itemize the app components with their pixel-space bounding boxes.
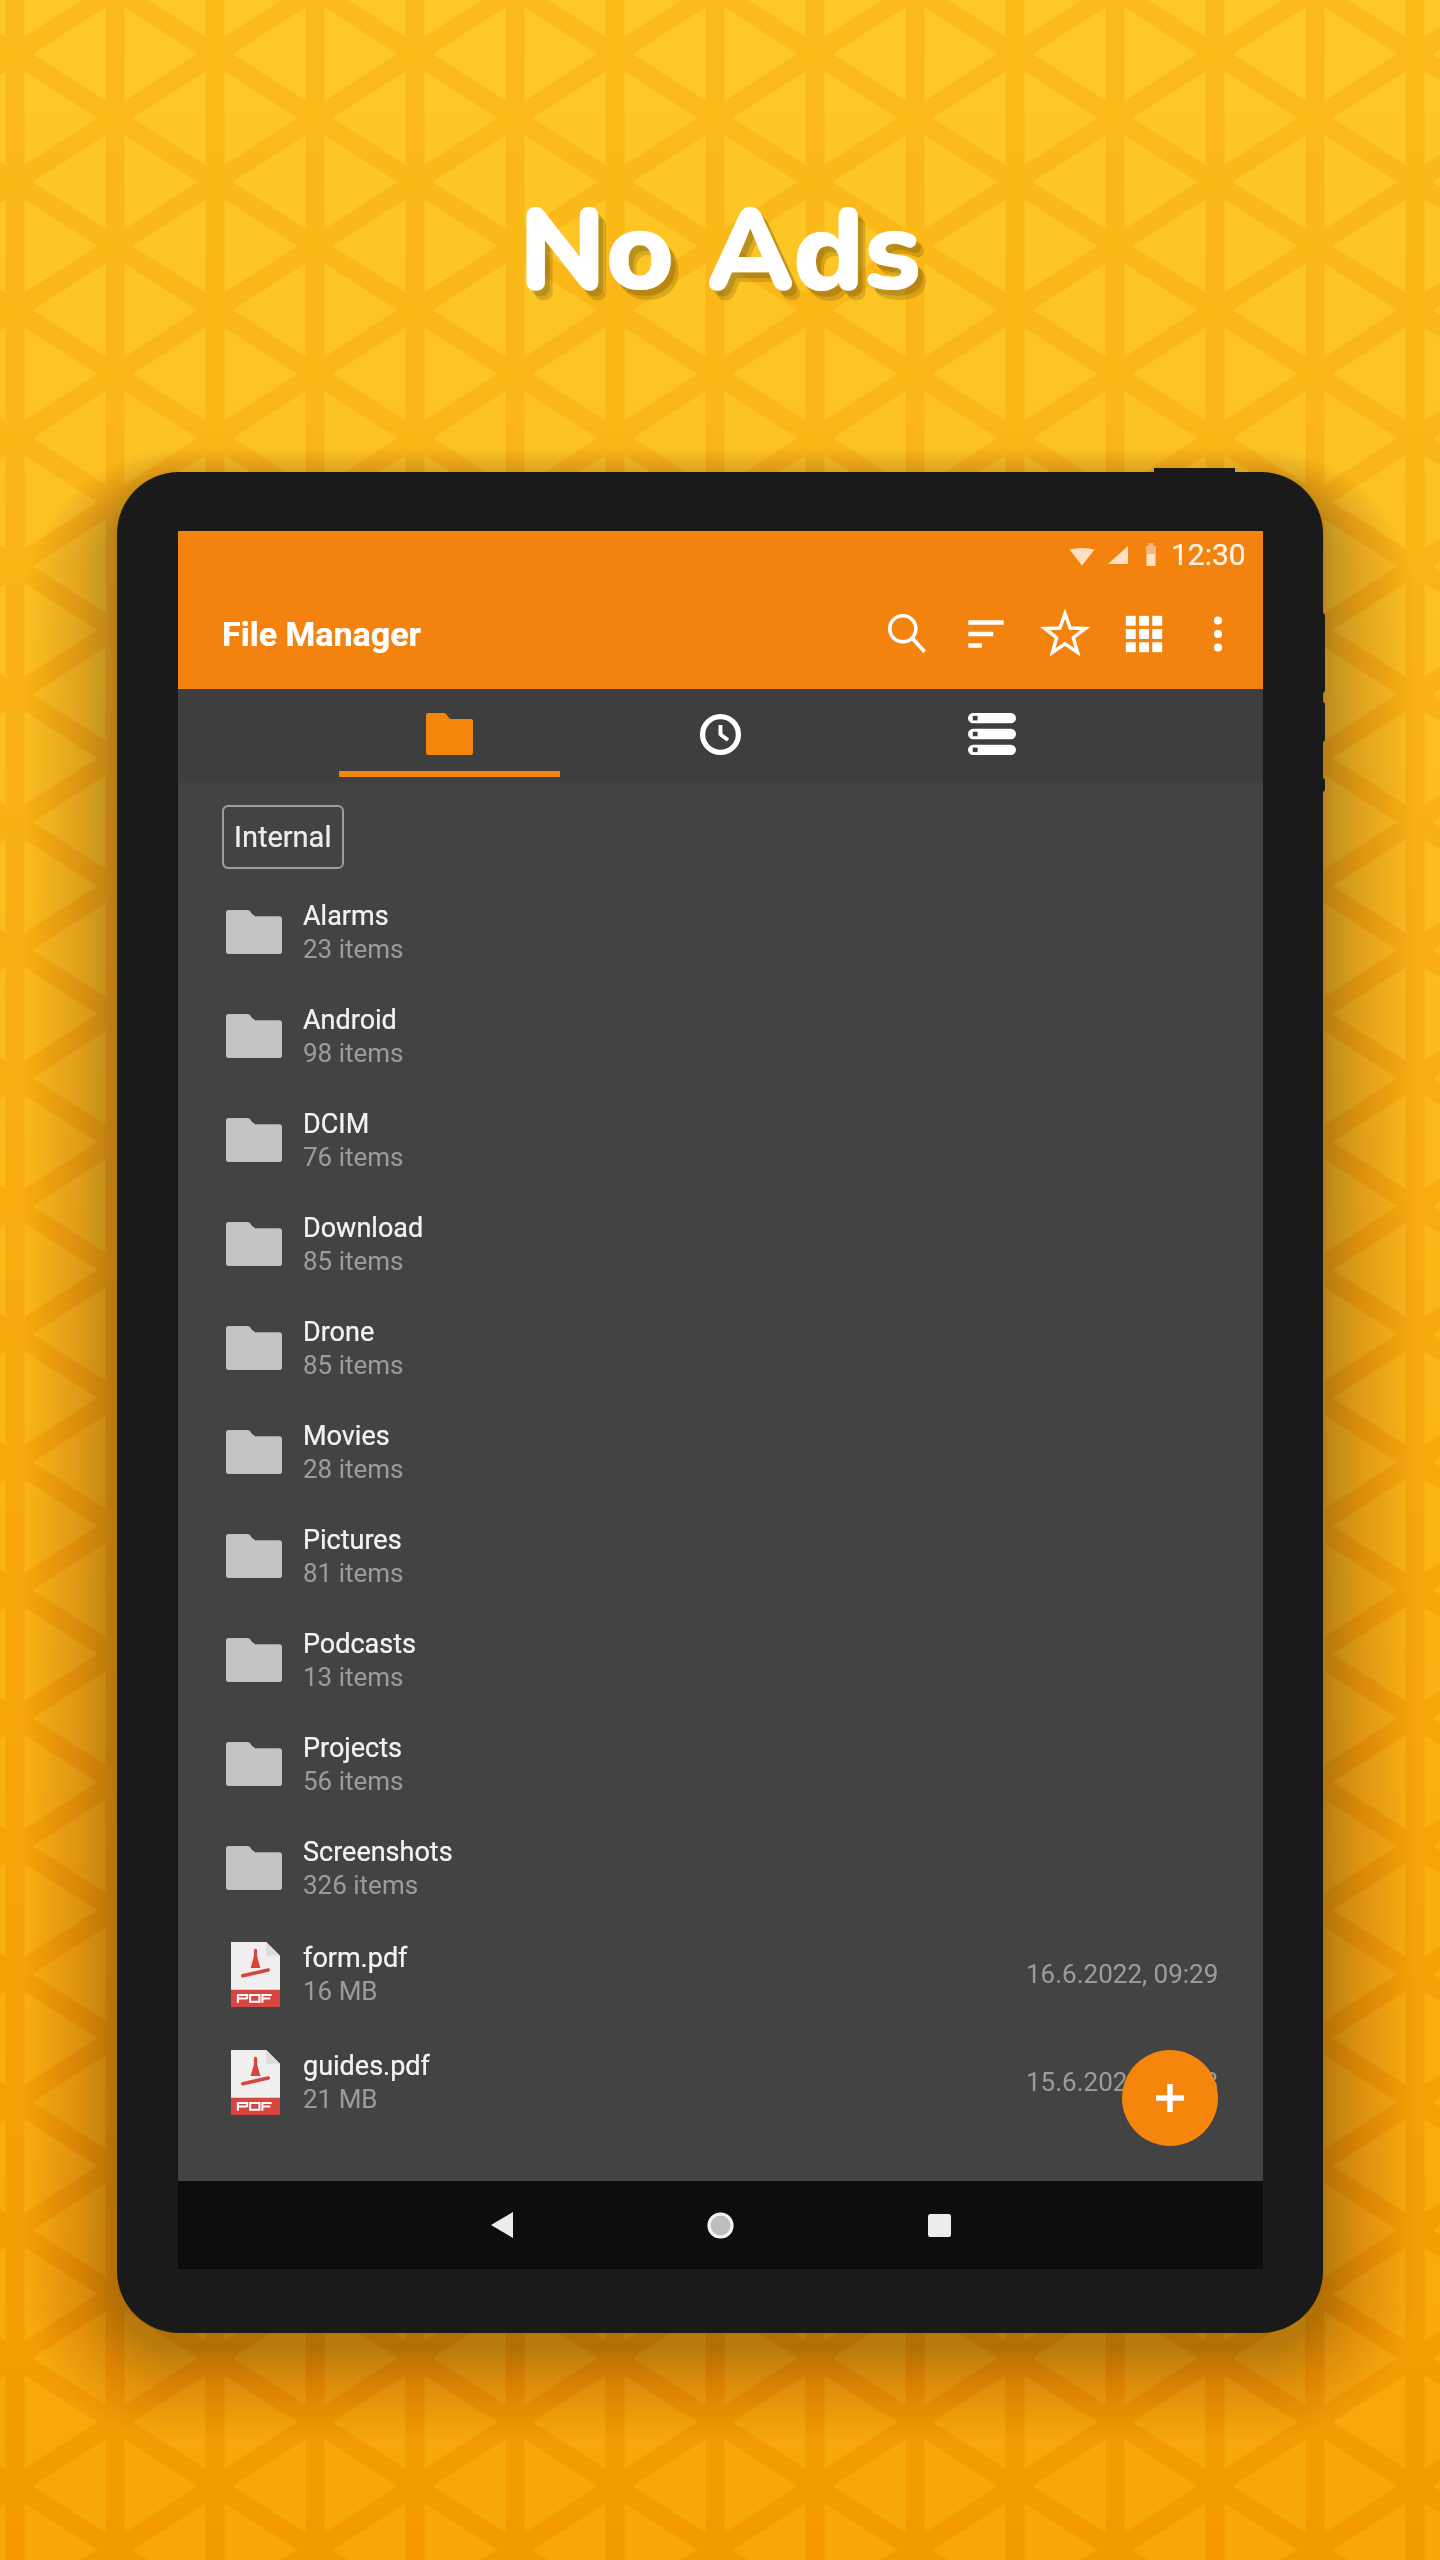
staticText: No Ads bbox=[527, 183, 929, 340]
staticText: 28 items bbox=[303, 1454, 404, 1484]
staticText: No Ads bbox=[524, 179, 926, 336]
staticText: 16.6.2022, 09:29 bbox=[1026, 1959, 1219, 1989]
button[interactable]: Movies bbox=[178, 1400, 1263, 1504]
staticText: Android bbox=[303, 1004, 397, 1036]
staticText: Podcasts bbox=[303, 1628, 417, 1660]
staticText: 56 items bbox=[303, 1766, 404, 1796]
staticText: Pictures bbox=[303, 1524, 402, 1556]
staticText: 23 items bbox=[303, 934, 404, 964]
staticText: guides.pdf bbox=[303, 2050, 430, 2082]
button[interactable]: Storage bbox=[856, 689, 1127, 783]
button[interactable]: Android bbox=[178, 984, 1263, 1088]
button[interactable]: Recent bbox=[585, 689, 856, 783]
button[interactable]: Projects bbox=[178, 1712, 1263, 1816]
staticText: Internal bbox=[234, 820, 332, 854]
staticText: 13 items bbox=[303, 1662, 404, 1692]
staticText: 326 items bbox=[303, 1870, 419, 1900]
staticText: 98 items bbox=[303, 1038, 404, 1068]
button[interactable]: Podcasts bbox=[178, 1608, 1263, 1712]
staticText: 76 items bbox=[303, 1142, 404, 1172]
staticText: 16 MB bbox=[303, 1976, 378, 2006]
button[interactable]: Alarms bbox=[178, 880, 1263, 984]
button[interactable]: Folders bbox=[314, 689, 585, 783]
staticText: Drone bbox=[303, 1316, 375, 1348]
button[interactable]: Pictures bbox=[178, 1504, 1263, 1608]
staticText: File Manager bbox=[222, 614, 422, 654]
button[interactable]: Home bbox=[682, 2187, 758, 2263]
staticText: Alarms bbox=[303, 900, 389, 932]
staticText: 85 items bbox=[303, 1246, 404, 1276]
button[interactable]: Recents bbox=[901, 2187, 977, 2263]
staticText: No Ads bbox=[519, 173, 921, 330]
button[interactable]: Grid view bbox=[1104, 589, 1183, 679]
button[interactable]: Internal bbox=[222, 805, 344, 869]
staticText: 81 items bbox=[303, 1558, 404, 1588]
staticText: 15.6.2022, 11:03 bbox=[1026, 2067, 1219, 2097]
button[interactable]: Search bbox=[867, 589, 946, 679]
button[interactable]: Back bbox=[464, 2187, 540, 2263]
staticText: Projects bbox=[303, 1732, 402, 1764]
button[interactable]: form.pdf bbox=[178, 1920, 1263, 2028]
button[interactable]: Favorites bbox=[1025, 589, 1104, 679]
staticText: 12:30 bbox=[1171, 537, 1246, 572]
staticText: Download bbox=[303, 1212, 424, 1244]
button[interactable]: Download bbox=[178, 1192, 1263, 1296]
staticText: 21 MB bbox=[303, 2084, 378, 2114]
button[interactable]: Add bbox=[1122, 2050, 1218, 2146]
button[interactable]: Sort bbox=[946, 589, 1025, 679]
staticText: Movies bbox=[303, 1420, 390, 1452]
staticText: DCIM bbox=[303, 1108, 370, 1140]
staticText: form.pdf bbox=[303, 1942, 408, 1974]
button[interactable]: Drone bbox=[178, 1296, 1263, 1400]
staticText: 85 items bbox=[303, 1350, 404, 1380]
button[interactable]: guides.pdf bbox=[178, 2028, 1263, 2136]
button[interactable]: Screenshots bbox=[178, 1816, 1263, 1920]
button[interactable]: DCIM bbox=[178, 1088, 1263, 1192]
button[interactable]: More options bbox=[1183, 589, 1253, 679]
staticText: Screenshots bbox=[303, 1836, 453, 1868]
